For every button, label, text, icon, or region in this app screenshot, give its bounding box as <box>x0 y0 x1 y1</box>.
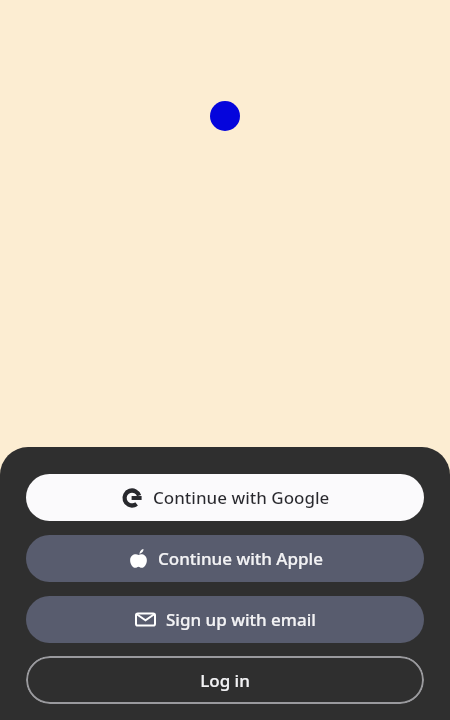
staticText: Sign up with email <box>166 608 316 631</box>
other: Email <box>135 609 156 630</box>
staticText: Continue with Google <box>153 486 330 509</box>
staticText: Log in <box>200 669 250 692</box>
button[interactable]: Google <box>26 474 424 521</box>
other: Apple <box>129 549 148 568</box>
button[interactable]: Apple <box>26 535 424 582</box>
staticText: Continue with Apple <box>158 547 323 570</box>
other: Google <box>122 488 142 508</box>
button[interactable]: Log in <box>26 656 424 704</box>
button[interactable]: Email <box>26 596 424 643</box>
